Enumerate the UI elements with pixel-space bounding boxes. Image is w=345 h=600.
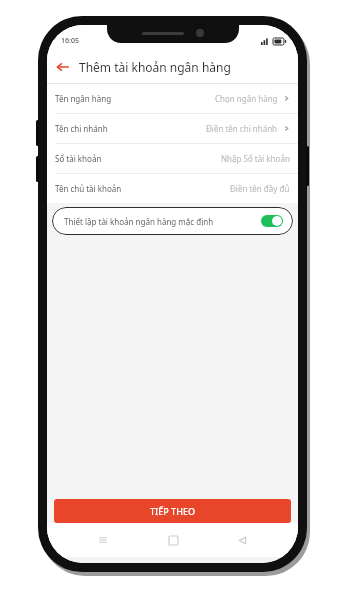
staticText: Số tài khoản [55,153,102,164]
button[interactable]: Tên chi nhánh [47,114,298,143]
staticText: Chọn ngân hàng [215,93,278,104]
button[interactable]: Tên chủ tài khoản [47,174,298,203]
button[interactable]: TIẾP THEO [54,499,291,523]
staticText: Tên ngân hàng [55,93,112,104]
button[interactable]: Số tài khoản [47,144,298,173]
staticText: Tên chi nhánh [55,123,108,134]
staticText: Nhập Số tài khoản [221,153,290,164]
staticText: 16:05 [61,36,79,46]
staticText: Thiết lập tài khoản ngân hàng mặc định [64,216,214,227]
button[interactable]: Set as default bank account [261,215,283,227]
staticText: Thêm tài khoản ngân hàng [79,59,231,75]
button[interactable]: Back [47,51,79,83]
staticText: TIẾP THEO [150,505,195,517]
button[interactable]: Tên ngân hàng [47,84,298,113]
button[interactable]: Recent apps [90,527,116,553]
staticText: Điền tên đầy đủ [230,183,290,194]
staticText: Điền tên chi nhánh [206,123,278,134]
button[interactable]: Back [229,527,255,553]
button[interactable]: Thiết lập tài khoản ngân hàng mặc định [52,207,293,235]
button[interactable]: Home [160,527,186,553]
staticText: Tên chủ tài khoản [55,183,122,194]
